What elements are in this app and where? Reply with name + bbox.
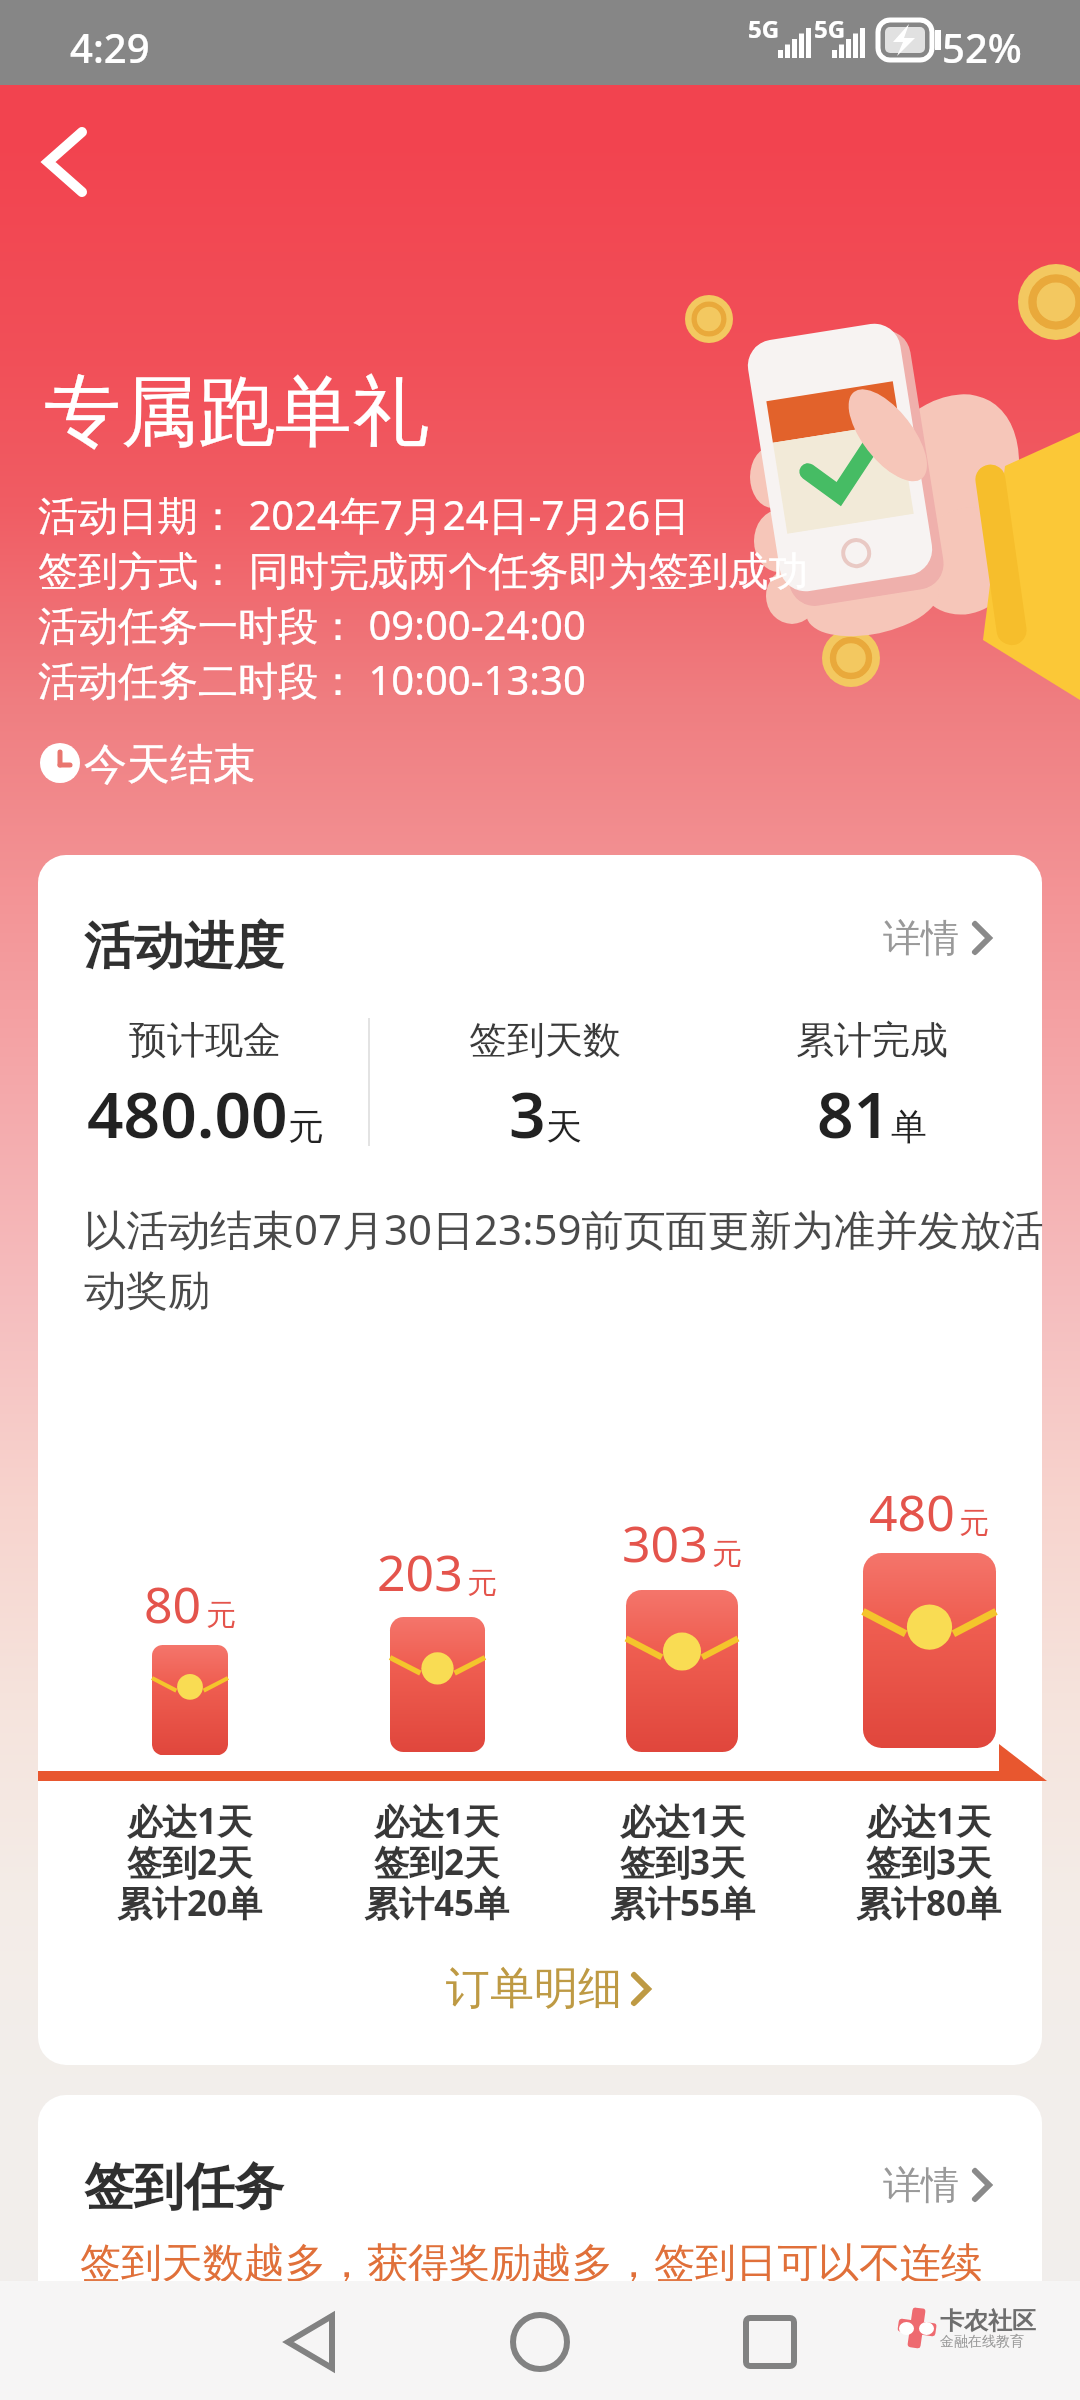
staticText: 累计20单	[117, 1879, 263, 1927]
staticText: 303	[622, 1509, 708, 1577]
staticText: 动奖励	[84, 1265, 210, 1318]
staticText: 签到方式： 同时完成两个任务即为签到成功	[38, 542, 809, 597]
staticText: 累计55单	[610, 1879, 756, 1927]
staticText: 必达1天	[866, 1797, 992, 1845]
staticText: 天	[546, 1104, 582, 1149]
staticText: 累计80单	[856, 1879, 1002, 1927]
staticText: 订单明细	[446, 1961, 622, 2016]
staticText: 必达1天	[374, 1797, 500, 1845]
button[interactable]	[740, 2312, 800, 2372]
staticText: 4:29	[70, 20, 150, 74]
staticText: 签到2天	[127, 1838, 253, 1886]
staticText: 元	[959, 1504, 989, 1542]
staticText: 203	[377, 1538, 463, 1606]
staticText: 累计45单	[364, 1879, 510, 1927]
staticText: 详情	[883, 914, 959, 962]
staticText: 元	[467, 1564, 497, 1602]
button[interactable]	[508, 2310, 572, 2374]
staticText: 活动进度	[84, 915, 284, 978]
staticText: 活动任务二时段： 10:00-13:30	[38, 652, 586, 707]
button[interactable]: 详情	[873, 904, 1003, 972]
staticText: 金融在线教育	[940, 2333, 1024, 2351]
staticText: 5G	[814, 12, 846, 45]
staticText: 今天结束	[84, 738, 256, 792]
staticText: 480	[869, 1478, 955, 1546]
staticText: 元	[288, 1104, 324, 1149]
staticText: 81	[817, 1070, 891, 1157]
staticText: 签到天数	[469, 1016, 621, 1064]
staticText: 活动日期： 2024年7月24日-7月26日	[38, 487, 691, 542]
staticText: 详情	[883, 2161, 959, 2209]
staticText: 80	[144, 1570, 202, 1638]
staticText: 必达1天	[127, 1797, 253, 1845]
staticText: 元	[712, 1535, 742, 1573]
staticText: 签到天数越多，获得奖励越多，签到日可以不连续	[80, 2238, 982, 2290]
staticText: 5G	[748, 12, 780, 45]
staticText: 专属跑单礼	[44, 364, 429, 461]
staticText: 3	[509, 1070, 546, 1157]
staticText: 卡农社区	[940, 2306, 1036, 2336]
staticText: 签到3天	[620, 1838, 746, 1886]
staticText: 活动任务一时段： 09:00-24:00	[38, 597, 586, 652]
button[interactable]: 订单明细	[446, 1958, 656, 2018]
staticText: 480.00	[87, 1070, 288, 1157]
button[interactable]	[30, 120, 110, 200]
staticText: 签到任务	[84, 2156, 284, 2219]
button[interactable]: 详情	[873, 2151, 1003, 2219]
staticText: 签到3天	[866, 1838, 992, 1886]
staticText: 单	[891, 1104, 927, 1149]
button[interactable]	[275, 2310, 345, 2374]
staticText: 必达1天	[620, 1797, 746, 1845]
staticText: 预计现金	[129, 1016, 281, 1064]
staticText: 累计完成	[796, 1016, 948, 1064]
staticText: 签到2天	[374, 1838, 500, 1886]
staticText: 元	[206, 1596, 236, 1634]
staticText: 以活动结束07月30日23:59前页面更新为准并发放活	[84, 1200, 1044, 1257]
staticText: 52%	[942, 20, 1022, 74]
